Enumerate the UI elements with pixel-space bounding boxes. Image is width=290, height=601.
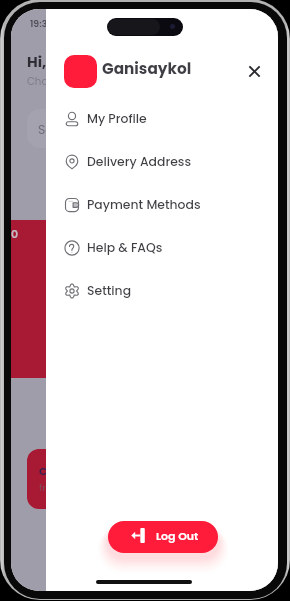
staticText: 50	[11, 226, 19, 241]
staticText: My Profile	[87, 110, 147, 127]
staticText: from 12k	[39, 481, 78, 494]
button[interactable]: Delivery Address	[46, 140, 278, 183]
staticText: Chicken	[39, 463, 85, 478]
staticText: Search your favorite menu	[38, 121, 204, 138]
staticText: Help & FAQs	[87, 239, 163, 256]
button[interactable]: Help & FAQs	[46, 226, 278, 269]
staticText: Hi, Ganisaykol	[27, 52, 135, 72]
staticText: Setting	[87, 282, 132, 299]
button[interactable]: Setting	[46, 269, 278, 312]
staticText: Log Out	[156, 528, 199, 543]
staticText: Delivery Address	[87, 153, 192, 170]
button[interactable]: Payment Methods	[46, 183, 278, 226]
button[interactable]: Close menu	[243, 61, 263, 81]
staticText: Choose your favorite menu	[27, 74, 166, 88]
staticText: Payment Methods	[87, 196, 201, 213]
button[interactable]: Log Out	[108, 521, 218, 553]
staticText: 19:31	[30, 17, 51, 30]
staticText: Ganisaykol	[102, 58, 192, 79]
button[interactable]: My Profile	[46, 97, 278, 140]
